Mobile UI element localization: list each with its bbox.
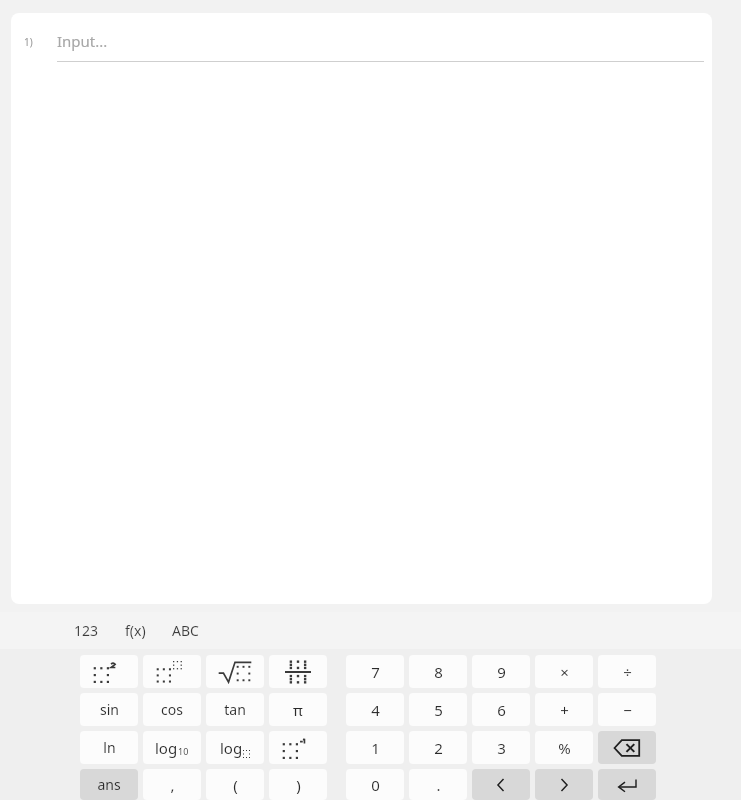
- staticText: 3: [497, 738, 506, 758]
- button[interactable]: 7: [346, 655, 404, 688]
- staticText: 10: [178, 745, 189, 757]
- button[interactable]: ln: [80, 731, 138, 764]
- button[interactable]: f(x): [123, 617, 148, 644]
- staticText: f(x): [125, 621, 146, 640]
- staticText: +: [560, 700, 569, 720]
- staticText: tan: [224, 700, 246, 719]
- button[interactable]: Enter: [598, 769, 656, 800]
- button[interactable]: +: [535, 693, 593, 726]
- button[interactable]: 8: [409, 655, 467, 688]
- button[interactable]: log: [143, 731, 201, 764]
- button[interactable]: ×: [535, 655, 593, 688]
- staticText: ÷: [623, 662, 632, 682]
- button[interactable]: (: [206, 769, 264, 800]
- button[interactable]: [80, 655, 138, 688]
- button[interactable]: ): [269, 769, 327, 800]
- staticText: 123: [74, 621, 99, 640]
- button[interactable]: cos: [143, 693, 201, 726]
- button[interactable]: log: [206, 731, 264, 764]
- staticText: .: [436, 775, 441, 795]
- button[interactable]: ,: [143, 769, 201, 800]
- button[interactable]: [206, 655, 264, 688]
- button[interactable]: 123: [72, 617, 101, 644]
- staticText: ans: [97, 775, 121, 794]
- button[interactable]: ABC: [170, 617, 201, 644]
- button[interactable]: %: [535, 731, 593, 764]
- staticText: cos: [161, 700, 183, 719]
- button[interactable]: 4: [346, 693, 404, 726]
- staticText: ,: [170, 775, 175, 795]
- staticText: 5: [434, 700, 443, 720]
- staticText: Input...: [57, 31, 108, 51]
- staticText: sin: [100, 700, 119, 719]
- staticText: 6: [497, 700, 506, 720]
- button[interactable]: 6: [472, 693, 530, 726]
- button[interactable]: ans: [80, 769, 138, 800]
- button[interactable]: 1: [346, 731, 404, 764]
- staticText: (: [233, 775, 238, 795]
- button[interactable]: [269, 731, 327, 764]
- button[interactable]: tan: [206, 693, 264, 726]
- staticText: 1): [24, 35, 33, 49]
- button[interactable]: 2: [409, 731, 467, 764]
- button[interactable]: [143, 655, 201, 688]
- staticText: 7: [371, 662, 380, 682]
- staticText: ): [296, 775, 301, 795]
- button[interactable]: 3: [472, 731, 530, 764]
- button[interactable]: sin: [80, 693, 138, 726]
- staticText: 4: [371, 700, 380, 720]
- button[interactable]: 0: [346, 769, 404, 800]
- staticText: log: [220, 738, 243, 758]
- button[interactable]: 9: [472, 655, 530, 688]
- button[interactable]: .: [409, 769, 467, 800]
- staticText: 2: [434, 738, 443, 758]
- staticText: 8: [434, 662, 443, 682]
- button[interactable]: Move left: [472, 769, 530, 800]
- button[interactable]: [269, 655, 327, 688]
- staticText: 9: [497, 662, 506, 682]
- staticText: −: [623, 700, 632, 720]
- button[interactable]: π: [269, 693, 327, 726]
- button[interactable]: ÷: [598, 655, 656, 688]
- button[interactable]: −: [598, 693, 656, 726]
- button[interactable]: 5: [409, 693, 467, 726]
- staticText: ln: [103, 738, 116, 757]
- staticText: log: [155, 738, 178, 758]
- staticText: 1: [371, 738, 380, 758]
- button[interactable]: Backspace: [598, 731, 656, 764]
- staticText: ABC: [172, 621, 199, 640]
- staticText: 0: [371, 775, 380, 795]
- staticText: ×: [560, 662, 569, 682]
- button[interactable]: Move right: [535, 769, 593, 800]
- staticText: %: [558, 738, 571, 758]
- staticText: π: [293, 700, 303, 720]
